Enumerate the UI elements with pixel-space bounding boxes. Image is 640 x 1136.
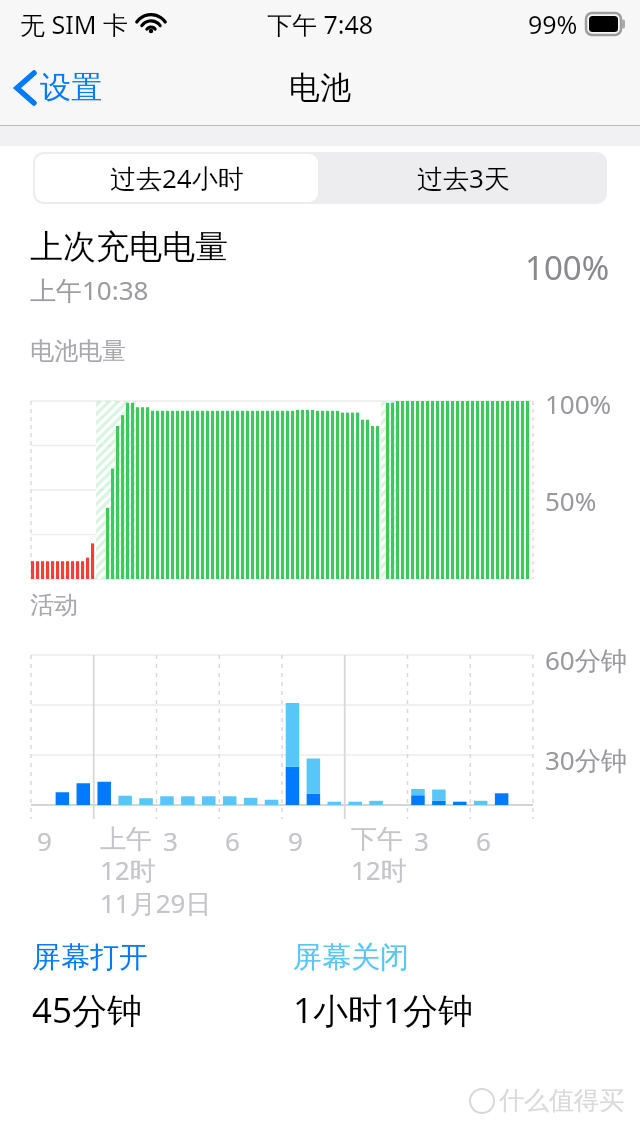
staticText: 45分钟 [32, 986, 143, 1034]
staticText: 无 SIM 卡 [20, 7, 128, 41]
staticText: 电池电量 [30, 336, 126, 366]
staticText: 过去24小时 [110, 160, 244, 196]
staticText: 下午 12时 [351, 823, 407, 887]
staticText: 设置 [40, 68, 102, 107]
staticText: 上午10:38 [30, 272, 149, 308]
staticText: 屏幕关闭 [293, 939, 409, 976]
staticText: 什么值得买 [499, 1085, 624, 1116]
staticText: 1小时1分钟 [293, 986, 474, 1034]
staticText: 屏幕打开 [32, 939, 148, 976]
staticText: 11月29日 [100, 885, 212, 921]
staticText: 99% [528, 7, 578, 41]
staticText: 活动 [30, 590, 78, 620]
staticText: 50% [545, 483, 597, 518]
staticText: 上午 12时 [100, 823, 156, 887]
staticText: 100% [545, 386, 612, 421]
staticText: 6 [476, 823, 491, 858]
button[interactable]: 过去3天 [320, 152, 607, 204]
staticText: 3 [414, 823, 429, 858]
staticText: 3 [163, 823, 178, 858]
staticText: 60分钟 [545, 642, 627, 678]
staticText: 6 [225, 823, 240, 858]
staticText: 30分钟 [545, 742, 627, 778]
staticText: 100% [525, 245, 610, 290]
button[interactable]: 设置 [0, 60, 114, 115]
button[interactable]: 过去24小时 [35, 154, 318, 202]
staticText: 下午 7:48 [267, 7, 374, 41]
staticText: 电池 [289, 68, 351, 107]
staticText: 9 [288, 823, 303, 858]
staticText: 9 [37, 823, 52, 858]
staticText: 过去3天 [417, 160, 510, 196]
staticText: 上次充电电量 [30, 226, 228, 268]
